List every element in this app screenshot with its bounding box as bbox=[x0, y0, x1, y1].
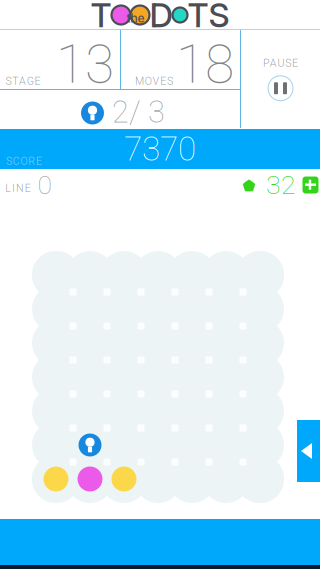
staticText: 13 bbox=[56, 33, 114, 96]
staticText: 32 bbox=[266, 169, 296, 201]
staticText: TS bbox=[187, 0, 229, 35]
staticText: the bbox=[126, 11, 144, 25]
staticText: PAUSE bbox=[263, 57, 298, 69]
staticText: 18 bbox=[176, 33, 234, 96]
staticText: 0 bbox=[37, 169, 52, 201]
staticText: STAGE bbox=[5, 75, 41, 87]
button[interactable]: 32 bbox=[235, 173, 320, 199]
staticText: MOVES bbox=[135, 75, 173, 87]
staticText: D bbox=[149, 0, 172, 35]
staticText: 2/ 3 bbox=[112, 94, 165, 130]
staticText: 7370 bbox=[124, 129, 196, 169]
staticText: T bbox=[90, 0, 111, 35]
staticText: LINE bbox=[5, 182, 31, 194]
button[interactable]: Show panel bbox=[297, 420, 320, 482]
button[interactable]: PAUSE bbox=[241, 30, 320, 128]
button[interactable]: 2/ 3 bbox=[81, 94, 157, 132]
staticText: SCORE bbox=[6, 155, 42, 167]
